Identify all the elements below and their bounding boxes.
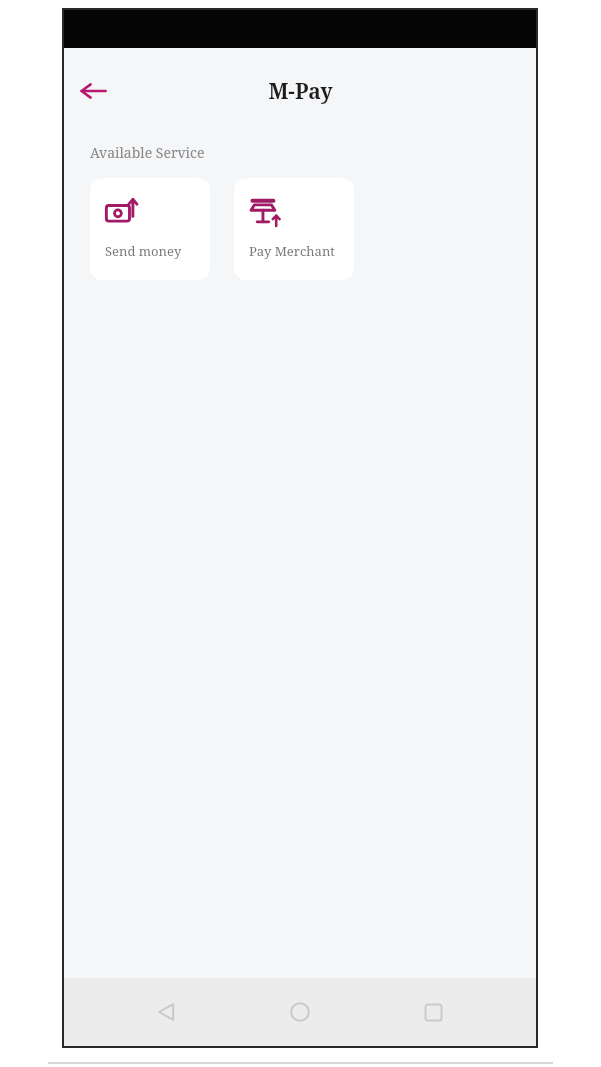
button[interactable]: Back <box>70 68 116 114</box>
button[interactable]: Pay Merchant <box>234 178 354 280</box>
button[interactable]: Back <box>144 989 190 1035</box>
staticText: M-Pay <box>268 77 333 106</box>
staticText: Send money <box>105 242 182 260</box>
staticText: Pay Merchant <box>249 242 335 260</box>
button[interactable]: Home <box>277 989 323 1035</box>
staticText: Available Service <box>90 143 205 162</box>
button[interactable]: Send money <box>90 178 210 280</box>
button[interactable]: Recent apps <box>410 989 456 1035</box>
